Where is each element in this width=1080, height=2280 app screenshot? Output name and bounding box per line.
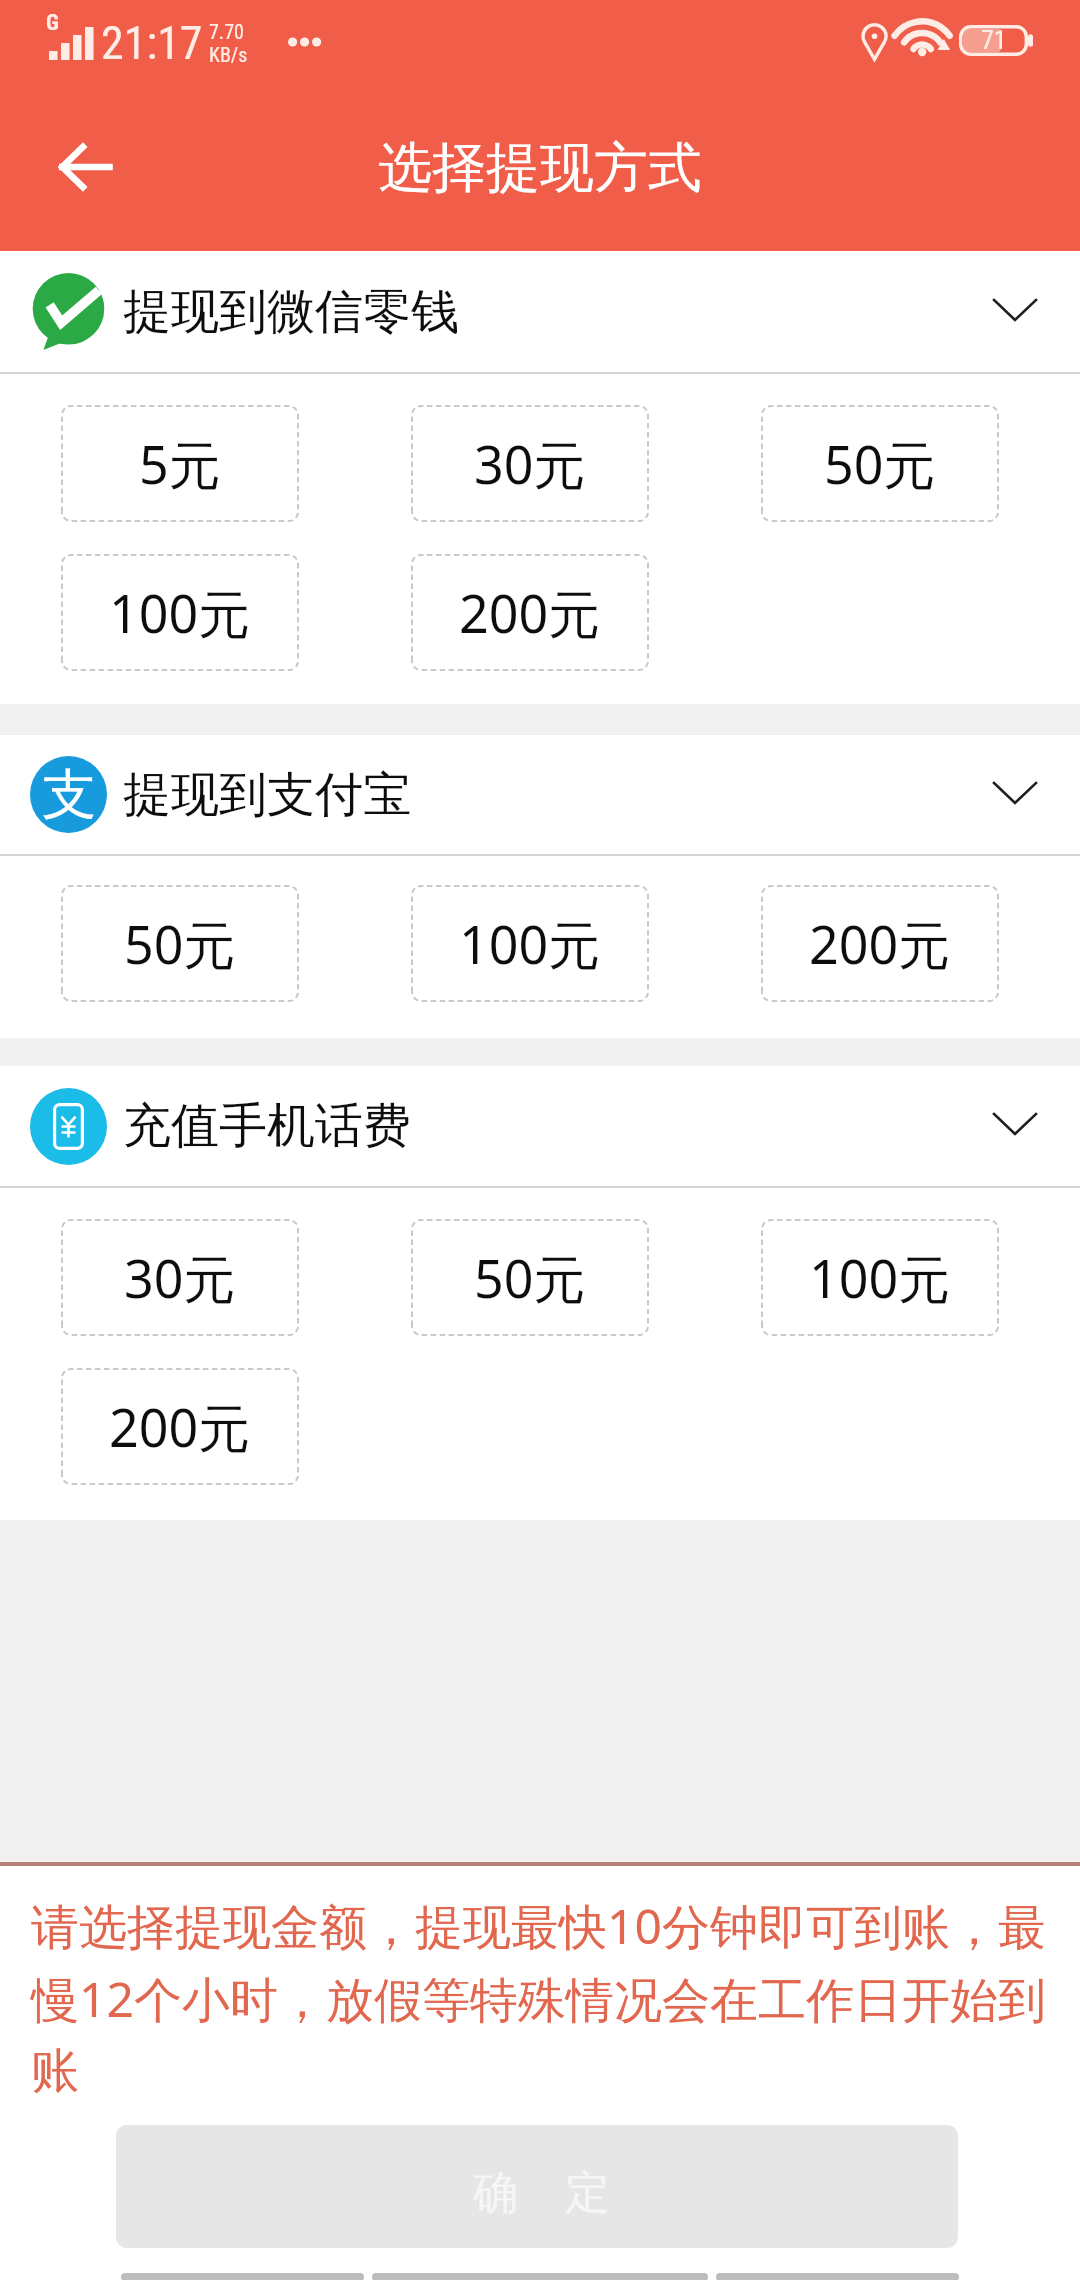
staticText: 50元 [474, 1242, 586, 1313]
button[interactable]: 200元 [411, 554, 649, 671]
staticText: 5元 [139, 428, 221, 499]
staticText: KB/s [209, 43, 248, 66]
staticText: 请选择提现金额，提现最快10分钟即可到账，最慢12个小时，放假等特殊情况会在工作… [31, 1893, 1057, 2102]
staticText: 21:17 [101, 16, 203, 70]
staticText: 充值手机话费 [123, 1096, 411, 1156]
staticText: G [46, 10, 59, 36]
staticText: 50元 [124, 908, 236, 979]
button[interactable]: 充值手机话费 [0, 1066, 1080, 1186]
button[interactable]: 100元 [761, 1219, 999, 1336]
staticText: 30元 [474, 428, 586, 499]
button[interactable]: 30元 [411, 405, 649, 522]
button[interactable]: 100元 [411, 885, 649, 1002]
staticText: 支 [42, 761, 96, 829]
staticText: 确 定 [473, 2160, 610, 2221]
staticText: 选择提现方式 [378, 134, 702, 202]
staticText: 提现到支付宝 [123, 765, 411, 825]
button[interactable]: 100元 [61, 554, 299, 671]
button[interactable]: 5元 [61, 405, 299, 522]
button[interactable]: 50元 [761, 405, 999, 522]
other: 展开 [992, 298, 1038, 322]
button[interactable]: 50元 [61, 885, 299, 1002]
staticText: 30元 [124, 1242, 236, 1313]
button[interactable]: 30元 [61, 1219, 299, 1336]
staticText: 200元 [809, 908, 951, 979]
staticText: 100元 [809, 1242, 951, 1313]
staticText: 50元 [824, 428, 936, 499]
button[interactable]: 提现到微信零钱 [0, 251, 1080, 372]
button[interactable]: 返回 [30, 112, 140, 222]
staticText: 71 [981, 25, 1007, 55]
staticText: 7.70 [209, 20, 244, 43]
staticText: 100元 [109, 577, 251, 648]
other: 展开 [992, 1112, 1038, 1136]
staticText: 100元 [459, 908, 601, 979]
other: 展开 [992, 781, 1038, 805]
button[interactable]: 50元 [411, 1219, 649, 1336]
button[interactable]: 支 [0, 735, 1080, 854]
staticText: 200元 [109, 1391, 251, 1462]
button[interactable]: 200元 [61, 1368, 299, 1485]
button[interactable]: 200元 [761, 885, 999, 1002]
staticText: 提现到微信零钱 [123, 282, 459, 342]
staticText: 200元 [459, 577, 601, 648]
